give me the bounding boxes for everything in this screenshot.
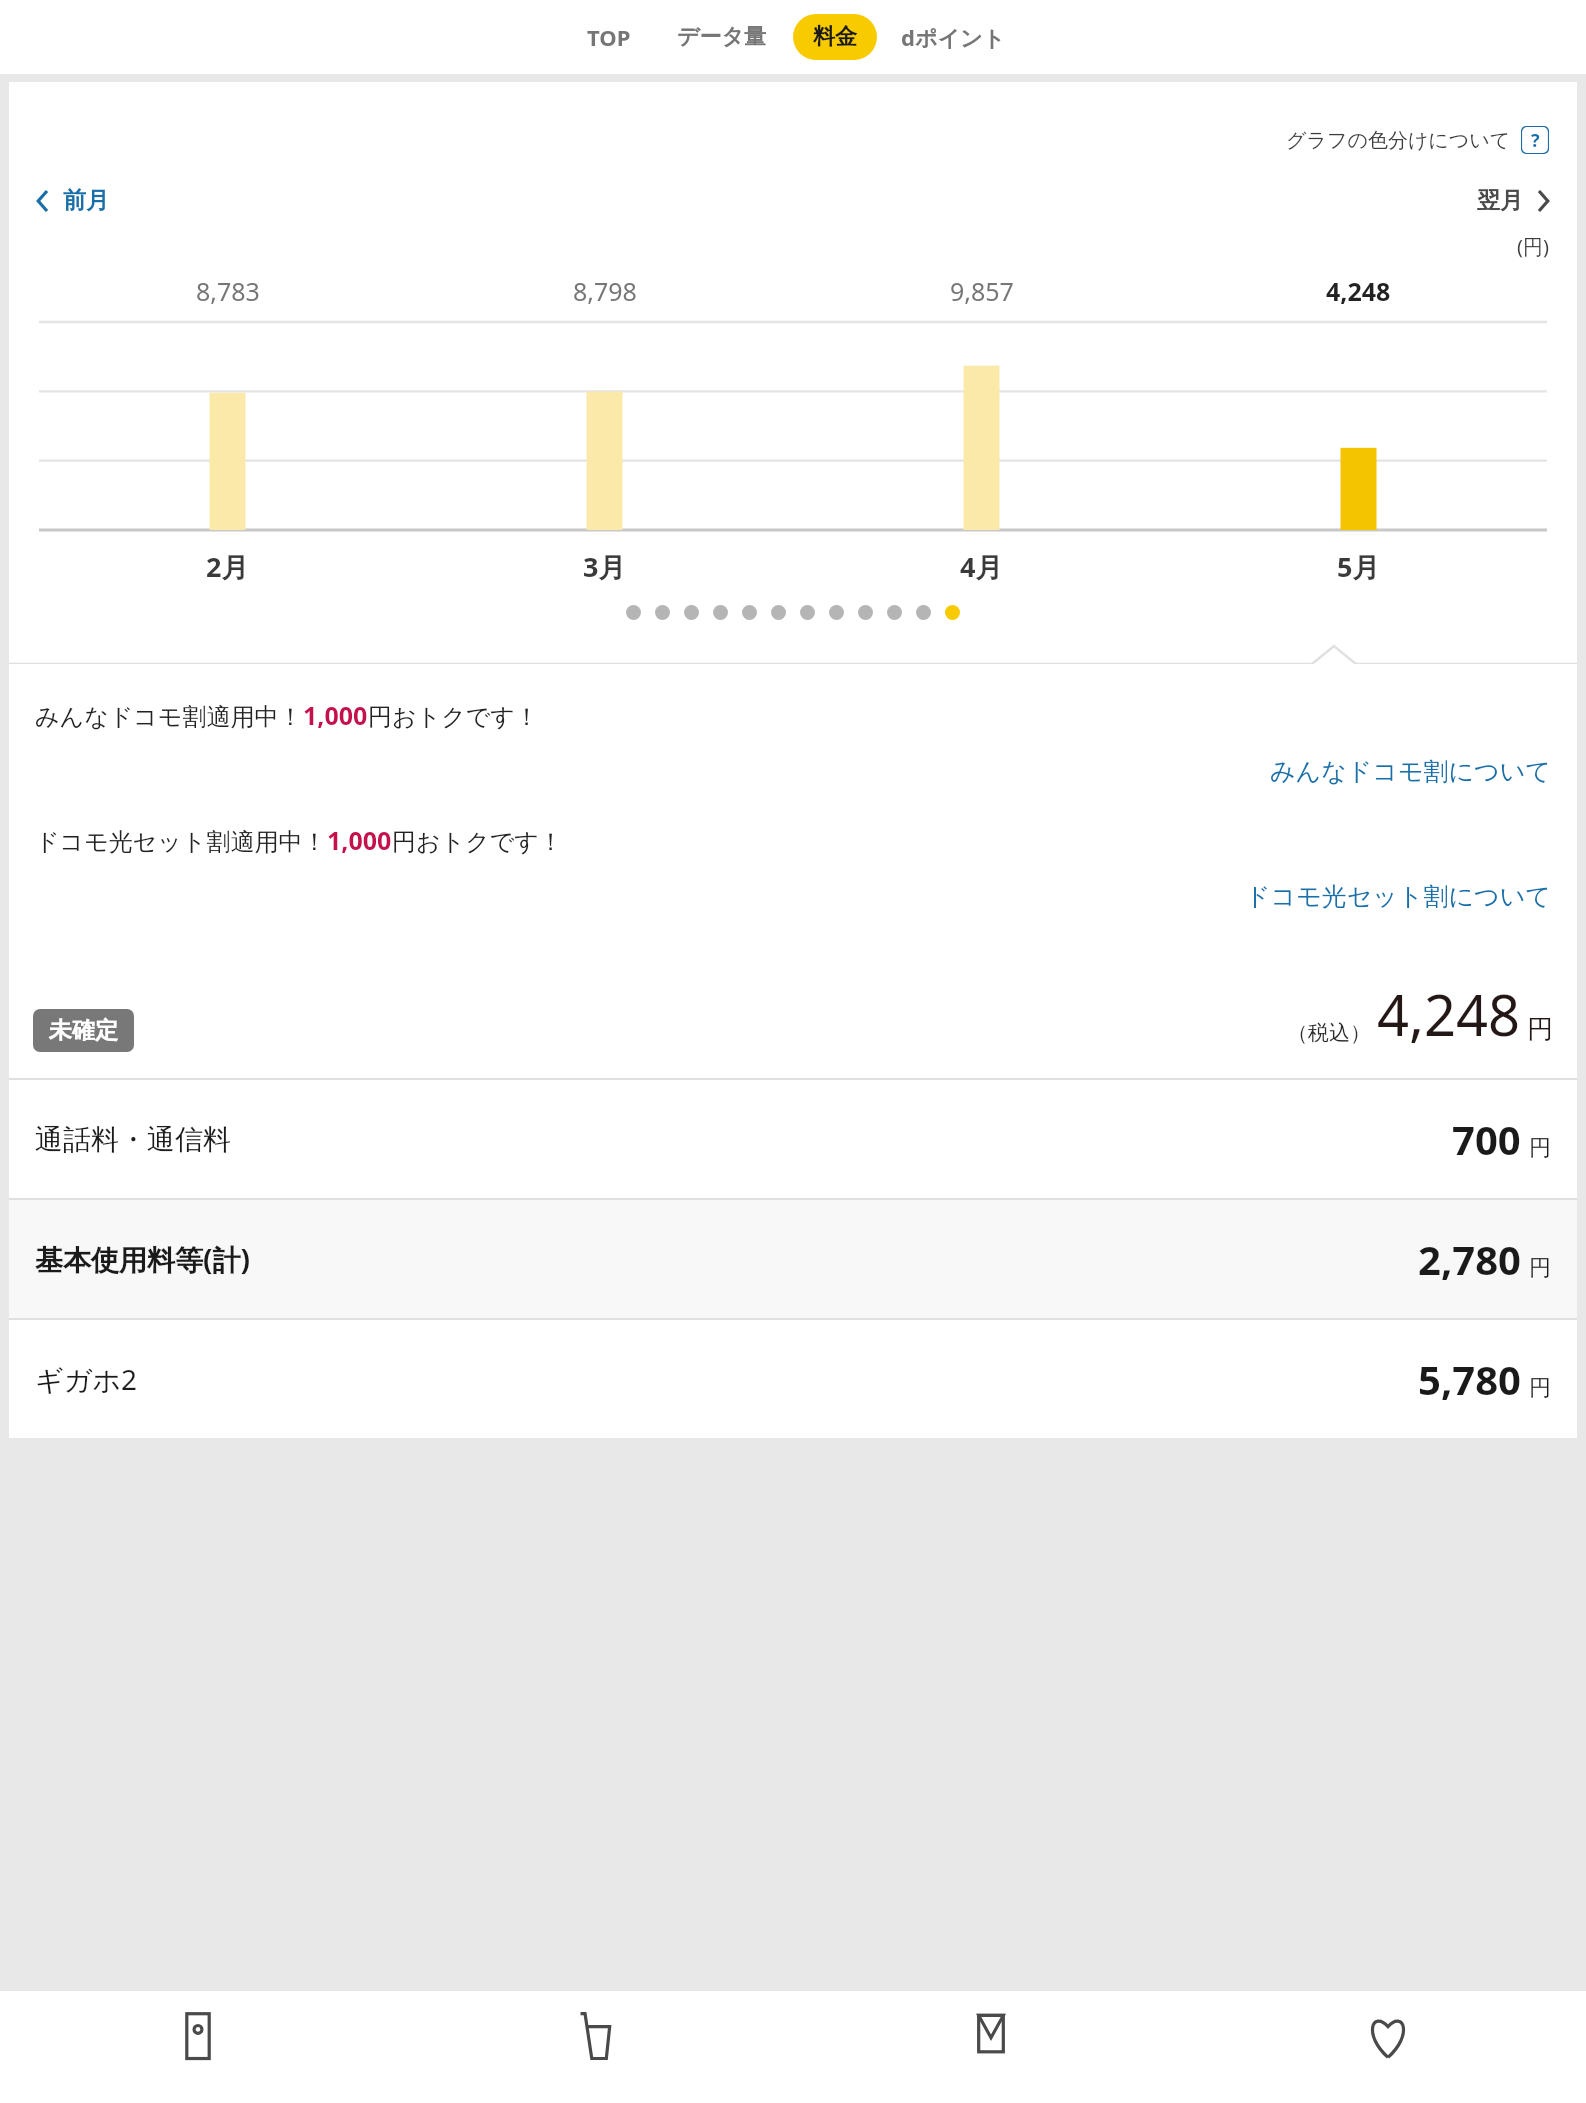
staticText: グラフの色分けについて [1286, 128, 1511, 153]
button[interactable]: Page 11 [916, 605, 931, 620]
staticText: 円 [1529, 1374, 1551, 1402]
button[interactable]: ドコモ光セット割について [1245, 881, 1577, 912]
staticText: 円 [1529, 1254, 1551, 1282]
staticText: 基本使用料等(計) [35, 1240, 250, 1278]
button[interactable]: Page 5 [742, 605, 757, 620]
staticText: TOP [587, 22, 631, 52]
staticText: 2月 [206, 548, 249, 585]
staticText: 円おトクです！ [392, 827, 563, 857]
staticText: 4,248 [1377, 976, 1521, 1052]
button[interactable]: Page 9 [858, 605, 873, 620]
staticText: ? [1531, 128, 1540, 153]
staticText: ギガホ2 [35, 1360, 137, 1398]
staticText: 通話料・通信料 [35, 1122, 231, 1157]
staticText: 4月 [960, 548, 1003, 585]
button[interactable]: Favorite [1189, 1991, 1586, 2103]
button[interactable]: Page 12 [945, 605, 960, 620]
button[interactable]: Cart [396, 1991, 792, 2103]
staticText: 3月 [583, 548, 626, 585]
staticText: 4,248 [1326, 274, 1391, 308]
staticText: ドコモ光セット割適用中！ [35, 827, 327, 857]
button[interactable]: TOP [569, 14, 649, 60]
staticText: 2,780 [1418, 1232, 1521, 1286]
staticText: 9,857 [950, 274, 1014, 308]
staticText: 1,000 [303, 698, 368, 732]
button[interactable]: dポイント [889, 14, 1017, 60]
button[interactable]: Profile [0, 1991, 396, 2103]
button[interactable]: 基本使用料等(計) [9, 1200, 1577, 1318]
button[interactable]: 料金 [793, 14, 877, 60]
staticText: 5,780 [1418, 1352, 1521, 1406]
button[interactable]: グラフの色分けについて [1282, 122, 1553, 158]
staticText: 700 [1452, 1112, 1521, 1166]
button[interactable]: Mail [792, 1991, 1189, 2103]
button[interactable]: ドコモ光セット割適用中！ [9, 823, 1577, 857]
button[interactable]: データ量 [663, 15, 781, 59]
staticText: ドコモ光セット割について [1245, 881, 1551, 912]
button[interactable]: Page 10 [887, 605, 902, 620]
button[interactable]: Page 2 [655, 605, 670, 620]
button[interactable]: Page 6 [771, 605, 786, 620]
staticText: 5月 [1337, 548, 1380, 585]
button[interactable]: みんなドコモ割について [1270, 756, 1577, 787]
button[interactable]: 未確定 [33, 1009, 134, 1052]
staticText: 1,000 [327, 823, 392, 857]
staticText: 8,798 [573, 274, 637, 308]
button[interactable]: Page 1 [626, 605, 641, 620]
button[interactable]: Page 3 [684, 605, 699, 620]
staticText: 円 [1529, 1134, 1551, 1162]
button[interactable]: Page 7 [800, 605, 815, 620]
staticText: (円) [1517, 233, 1549, 260]
button[interactable]: 通話料・通信料 [9, 1080, 1577, 1198]
staticText: データ量 [677, 23, 767, 51]
staticText: 前月 [63, 186, 109, 215]
staticText: dポイント [901, 22, 1005, 52]
staticText: 翌月 [1477, 186, 1523, 215]
staticText: 円 [1527, 1013, 1553, 1046]
staticText: 8,783 [196, 274, 260, 308]
button[interactable]: Page 8 [829, 605, 844, 620]
staticText: 未確定 [49, 1016, 118, 1045]
staticText: 円おトクです！ [368, 702, 539, 732]
button[interactable]: ギガホ2 [9, 1320, 1577, 1438]
staticText: みんなドコモ割適用中！ [35, 702, 303, 732]
button[interactable]: Page 4 [713, 605, 728, 620]
staticText: （税込） [1287, 1020, 1371, 1046]
staticText: 料金 [813, 23, 857, 51]
button[interactable]: 翌月 [1473, 180, 1555, 221]
button[interactable]: 前月 [31, 180, 113, 221]
staticText: みんなドコモ割について [1270, 756, 1551, 787]
button[interactable]: みんなドコモ割適用中！ [9, 698, 1577, 732]
